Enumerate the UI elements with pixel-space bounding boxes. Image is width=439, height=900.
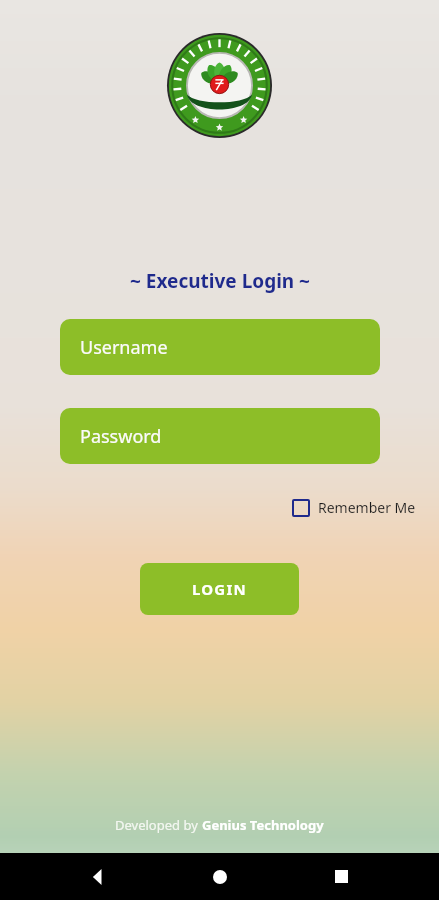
button[interactable]: LOGIN xyxy=(140,563,299,615)
staticText: Remember Me xyxy=(318,498,416,517)
button[interactable]: Back xyxy=(74,853,122,900)
button[interactable]: Remember Me xyxy=(290,494,418,521)
button[interactable]: Home xyxy=(196,853,244,900)
staticText: Username xyxy=(80,335,168,360)
button[interactable]: Username xyxy=(60,319,380,375)
button[interactable]: Recent apps xyxy=(317,853,365,900)
staticText: Developed by xyxy=(115,816,202,834)
staticText: ~ Executive Login ~ xyxy=(130,268,310,294)
button[interactable]: Password xyxy=(60,408,380,464)
staticText: Password xyxy=(80,424,162,449)
staticText: LOGIN xyxy=(192,579,247,599)
staticText: Genius Technology xyxy=(202,816,324,834)
